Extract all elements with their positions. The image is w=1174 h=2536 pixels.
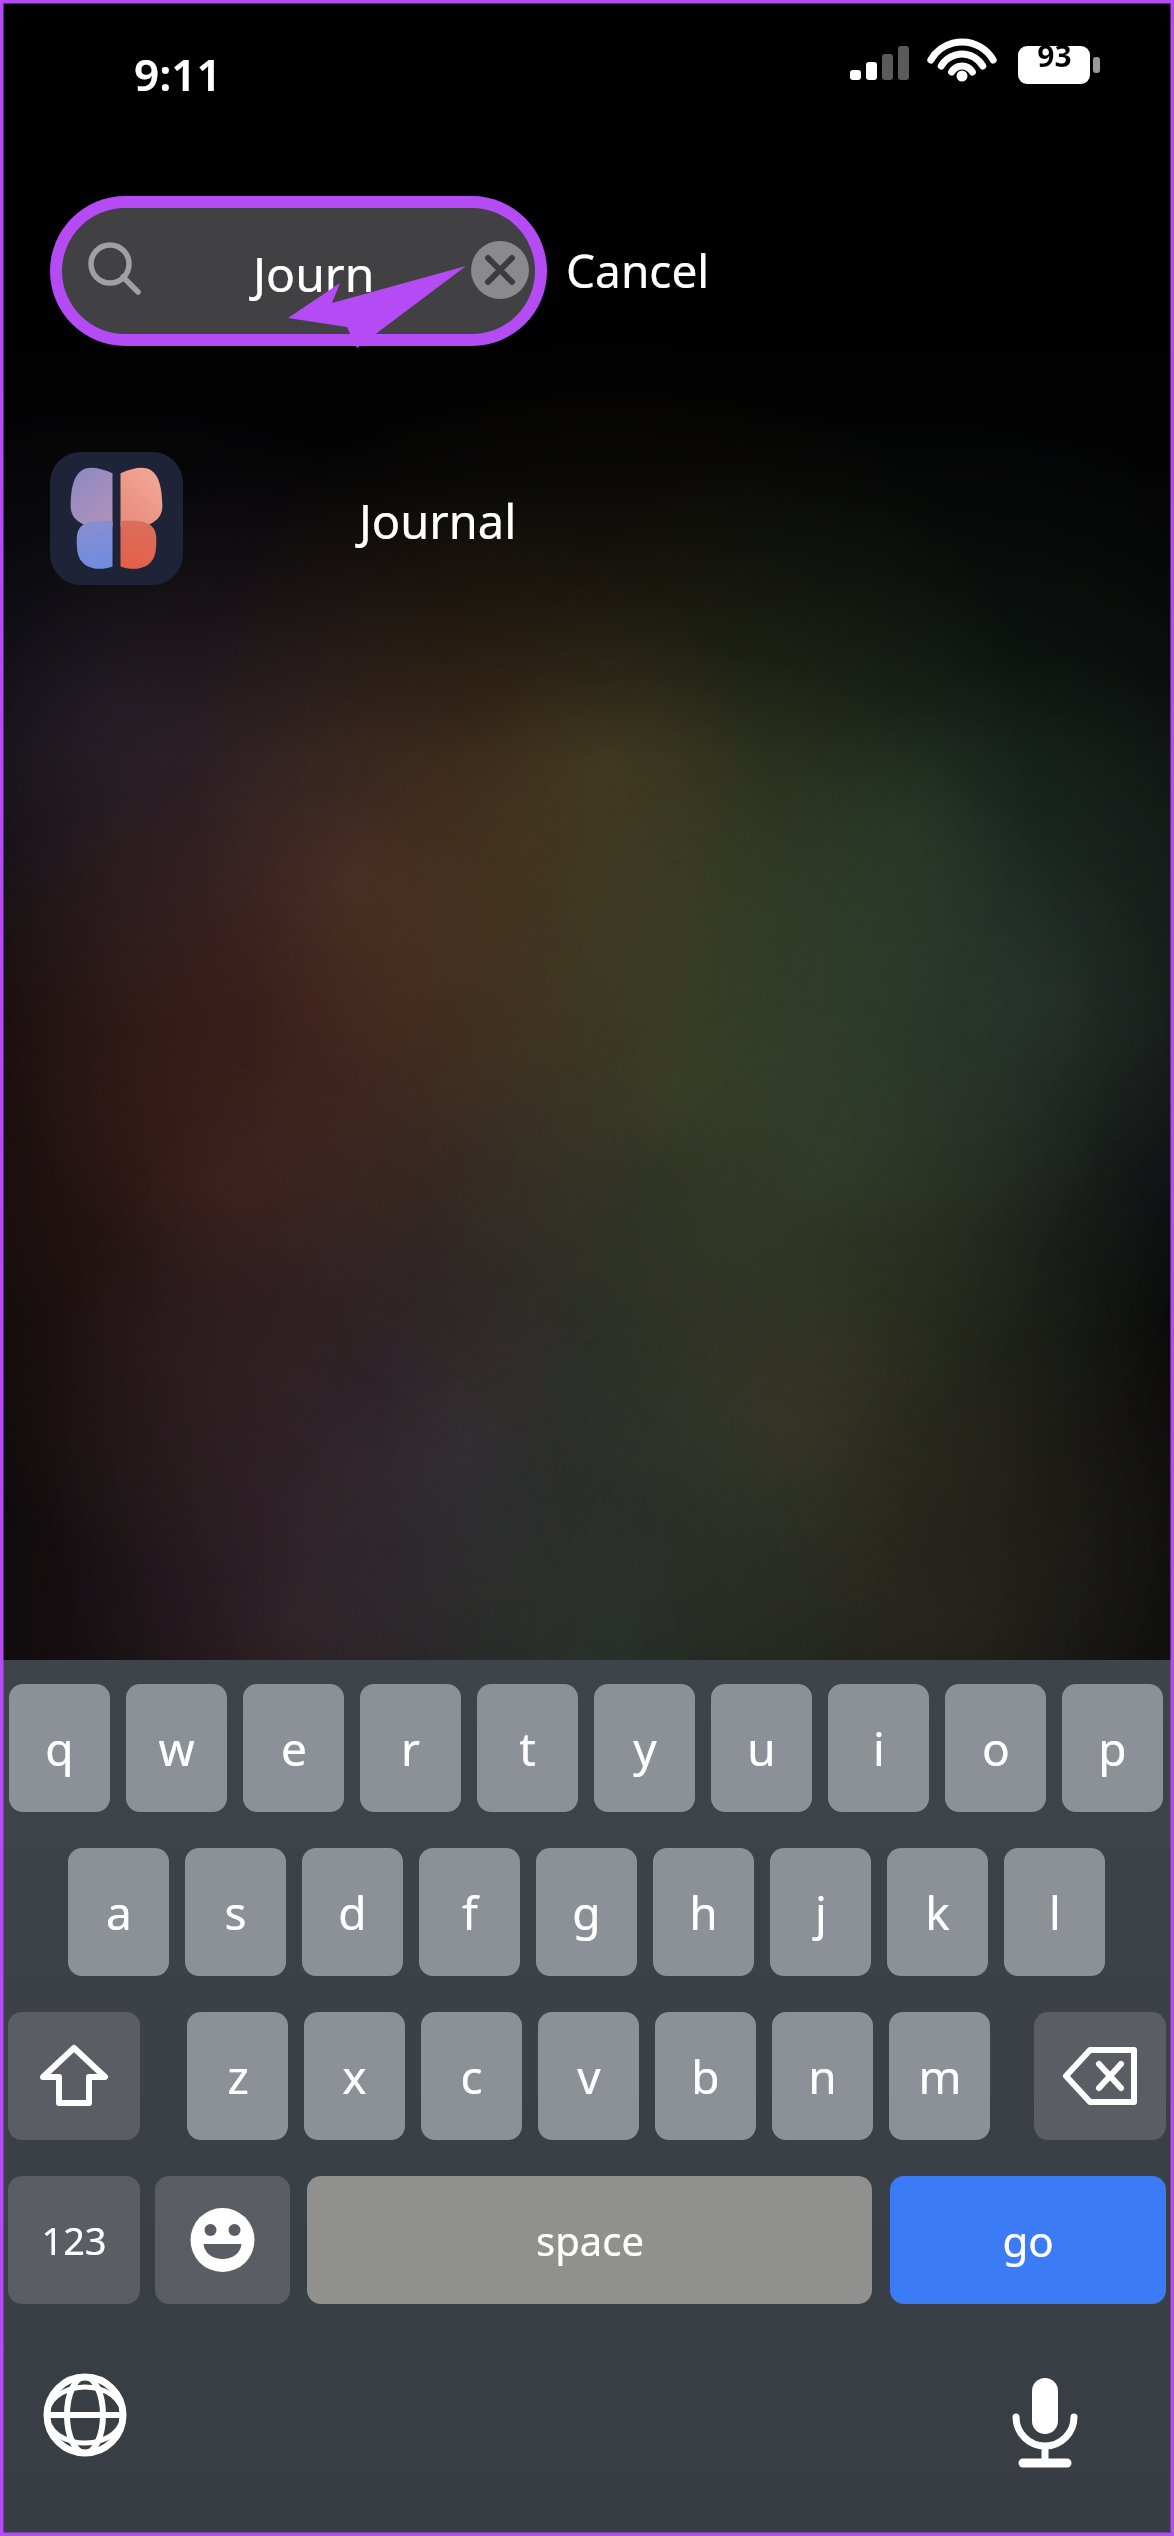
staticText: j	[815, 1881, 827, 1944]
staticText: o	[982, 1717, 1010, 1780]
staticText: a	[106, 1881, 132, 1944]
button[interactable]: s	[185, 1848, 286, 1976]
button[interactable]: k	[887, 1848, 988, 1976]
staticText: l	[1049, 1881, 1061, 1944]
staticText: Journ	[253, 241, 375, 306]
button[interactable]: w	[126, 1684, 227, 1812]
button[interactable]: c	[421, 2012, 522, 2140]
button[interactable]: d	[302, 1848, 403, 1976]
button[interactable]: p	[1062, 1684, 1163, 1812]
button[interactable]: r	[360, 1684, 461, 1812]
staticText: n	[808, 2045, 837, 2108]
staticText: v	[577, 2045, 601, 2108]
button[interactable]: Dictate	[1000, 2370, 1090, 2470]
button[interactable]: Backspace	[1034, 2012, 1166, 2140]
button[interactable]: f	[419, 1848, 520, 1976]
button[interactable]: v	[538, 2012, 639, 2140]
staticText: u	[747, 1717, 776, 1780]
staticText: i	[873, 1717, 885, 1780]
button[interactable]: o	[945, 1684, 1046, 1812]
button[interactable]: Emoji	[155, 2176, 290, 2304]
button[interactable]: m	[889, 2012, 990, 2140]
staticText: q	[45, 1717, 74, 1780]
staticText: g	[572, 1881, 601, 1944]
staticText: f	[462, 1881, 478, 1944]
staticText: p	[1098, 1717, 1127, 1780]
staticText: y	[633, 1717, 657, 1780]
staticText: Cancel	[566, 239, 710, 302]
staticText: 123	[41, 2214, 107, 2266]
staticText: go	[1002, 2212, 1054, 2269]
button[interactable]	[62, 208, 535, 334]
button[interactable]: z	[187, 2012, 288, 2140]
button[interactable]: h	[653, 1848, 754, 1976]
button[interactable]: go	[890, 2176, 1166, 2304]
button[interactable]: x	[304, 2012, 405, 2140]
button[interactable]: a	[68, 1848, 169, 1976]
staticText: z	[227, 2045, 249, 2108]
button[interactable]	[40, 420, 1140, 580]
button[interactable]: q	[9, 1684, 110, 1812]
staticText: s	[224, 1881, 247, 1944]
staticText: h	[689, 1881, 718, 1944]
staticText: x	[342, 2045, 367, 2108]
staticText: 93	[1037, 35, 1072, 76]
staticText: c	[460, 2045, 483, 2108]
staticText: Journal	[359, 489, 517, 553]
button[interactable]: y	[594, 1684, 695, 1812]
staticText: b	[691, 2045, 720, 2108]
button[interactable]: n	[772, 2012, 873, 2140]
button[interactable]: space	[307, 2176, 872, 2304]
button[interactable]: Change keyboard	[40, 2370, 130, 2470]
button[interactable]: Cancel	[566, 236, 766, 304]
button[interactable]: e	[243, 1684, 344, 1812]
button[interactable]: j	[770, 1848, 871, 1976]
staticText: m	[918, 2045, 962, 2108]
staticText: 9:11	[134, 44, 222, 104]
staticText: w	[158, 1717, 195, 1780]
button[interactable]: 123	[8, 2176, 140, 2304]
staticText: d	[338, 1881, 367, 1944]
button[interactable]: l	[1004, 1848, 1105, 1976]
staticText: e	[281, 1717, 307, 1780]
button[interactable]: u	[711, 1684, 812, 1812]
staticText: k	[925, 1881, 950, 1944]
staticText: r	[401, 1717, 420, 1780]
staticText: t	[519, 1717, 536, 1780]
button[interactable]: i	[828, 1684, 929, 1812]
button[interactable]: Shift	[8, 2012, 140, 2140]
other: Search	[88, 242, 146, 300]
button[interactable]: t	[477, 1684, 578, 1812]
button[interactable]: g	[536, 1848, 637, 1976]
button[interactable]: b	[655, 2012, 756, 2140]
staticText: space	[536, 2213, 644, 2267]
button[interactable]: Clear text	[471, 241, 529, 299]
